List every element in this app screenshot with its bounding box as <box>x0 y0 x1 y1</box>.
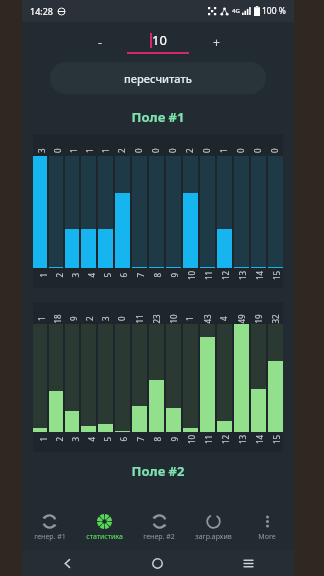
staticText: 1 <box>37 272 48 277</box>
staticText: 6 <box>117 436 128 441</box>
staticText: 14 <box>254 434 265 444</box>
staticText: 1 <box>218 148 229 153</box>
button[interactable]: загр.архив <box>186 506 240 550</box>
staticText: + <box>213 34 220 50</box>
staticText: 9 <box>168 272 179 277</box>
staticText: 8 <box>151 436 162 441</box>
staticText: 15 <box>271 434 282 444</box>
staticText: 0 <box>252 148 263 153</box>
button[interactable]: статистика <box>77 506 132 550</box>
staticText: 11 <box>203 434 214 444</box>
staticText: 9 <box>168 436 179 441</box>
staticText: 2 <box>53 436 64 441</box>
staticText: 4 <box>85 272 96 277</box>
staticText: генер. #2 <box>143 532 175 542</box>
staticText: генер. #1 <box>34 532 66 542</box>
staticText: 3 <box>100 316 111 321</box>
staticText: 8 <box>151 272 162 277</box>
button[interactable]: More <box>240 506 294 550</box>
staticText: 7 <box>134 436 145 441</box>
button[interactable]: генер. #2 <box>132 506 186 550</box>
staticText: 0 <box>269 148 280 153</box>
staticText: 2 <box>84 316 95 321</box>
staticText: 2 <box>184 148 195 153</box>
staticText: 15 <box>271 270 282 280</box>
staticText: 12 <box>220 270 231 280</box>
staticText: 0 <box>167 148 178 153</box>
staticText: загр.архив <box>195 532 232 542</box>
staticText: 9 <box>68 316 79 321</box>
staticText: 18 <box>51 313 62 323</box>
staticText: 13 <box>237 270 248 280</box>
staticText: 4 <box>85 436 96 441</box>
button[interactable]: Recents <box>203 550 294 576</box>
staticText: пересчитать <box>124 71 192 86</box>
staticText: 1 <box>100 148 111 153</box>
staticText: 12 <box>220 434 231 444</box>
staticText: 2 <box>116 148 127 153</box>
staticText: More <box>258 532 276 542</box>
staticText: 43 <box>201 313 212 323</box>
staticText: 23 <box>150 313 161 323</box>
button[interactable]: Home <box>112 550 203 576</box>
staticText: 6 <box>117 272 128 277</box>
staticText: 10 <box>186 270 197 280</box>
staticText: 11 <box>203 270 214 280</box>
button[interactable]: Decrease <box>87 29 113 55</box>
staticText: 1 <box>184 316 195 321</box>
staticText: 10 <box>167 313 178 323</box>
staticText: 0 <box>52 148 63 153</box>
staticText: Поле #2 <box>22 462 294 480</box>
staticText: 5 <box>101 436 112 441</box>
staticText: 13 <box>237 434 248 444</box>
staticText: - <box>98 34 102 50</box>
staticText: 4 <box>218 316 229 321</box>
staticText: 1 <box>84 148 95 153</box>
staticText: Поле #1 <box>22 108 294 126</box>
button[interactable]: генер. #1 <box>22 506 77 550</box>
staticText: 7 <box>134 272 145 277</box>
staticText: 10 <box>186 434 197 444</box>
staticText: 1 <box>36 316 47 321</box>
staticText: 10 <box>152 31 167 49</box>
staticText: 14 <box>254 270 265 280</box>
staticText: 19 <box>252 313 263 323</box>
staticText: 14:28 <box>30 5 54 17</box>
staticText: 1 <box>68 148 79 153</box>
staticText: 0 <box>150 148 161 153</box>
staticText: 3 <box>69 436 80 441</box>
staticText: 4G <box>232 7 240 15</box>
staticText: статистика <box>86 532 123 542</box>
staticText: 0 <box>201 148 212 153</box>
staticText: 0 <box>235 148 246 153</box>
button[interactable]: пересчитать <box>50 62 266 94</box>
staticText: 3 <box>69 272 80 277</box>
staticText: 49 <box>235 313 246 323</box>
staticText: 0 <box>133 148 144 153</box>
button[interactable]: Increase <box>203 29 229 55</box>
button[interactable]: Back <box>22 550 112 576</box>
staticText: 32 <box>269 313 280 323</box>
staticText: 1 <box>37 436 48 441</box>
staticText: 3 <box>36 148 47 153</box>
button[interactable]: 10 <box>127 31 189 54</box>
staticText: 0 <box>116 316 127 321</box>
staticText: 2 <box>53 272 64 277</box>
staticText: 5 <box>101 272 112 277</box>
staticText: 11 <box>133 313 144 323</box>
staticText: 100 % <box>262 5 286 17</box>
